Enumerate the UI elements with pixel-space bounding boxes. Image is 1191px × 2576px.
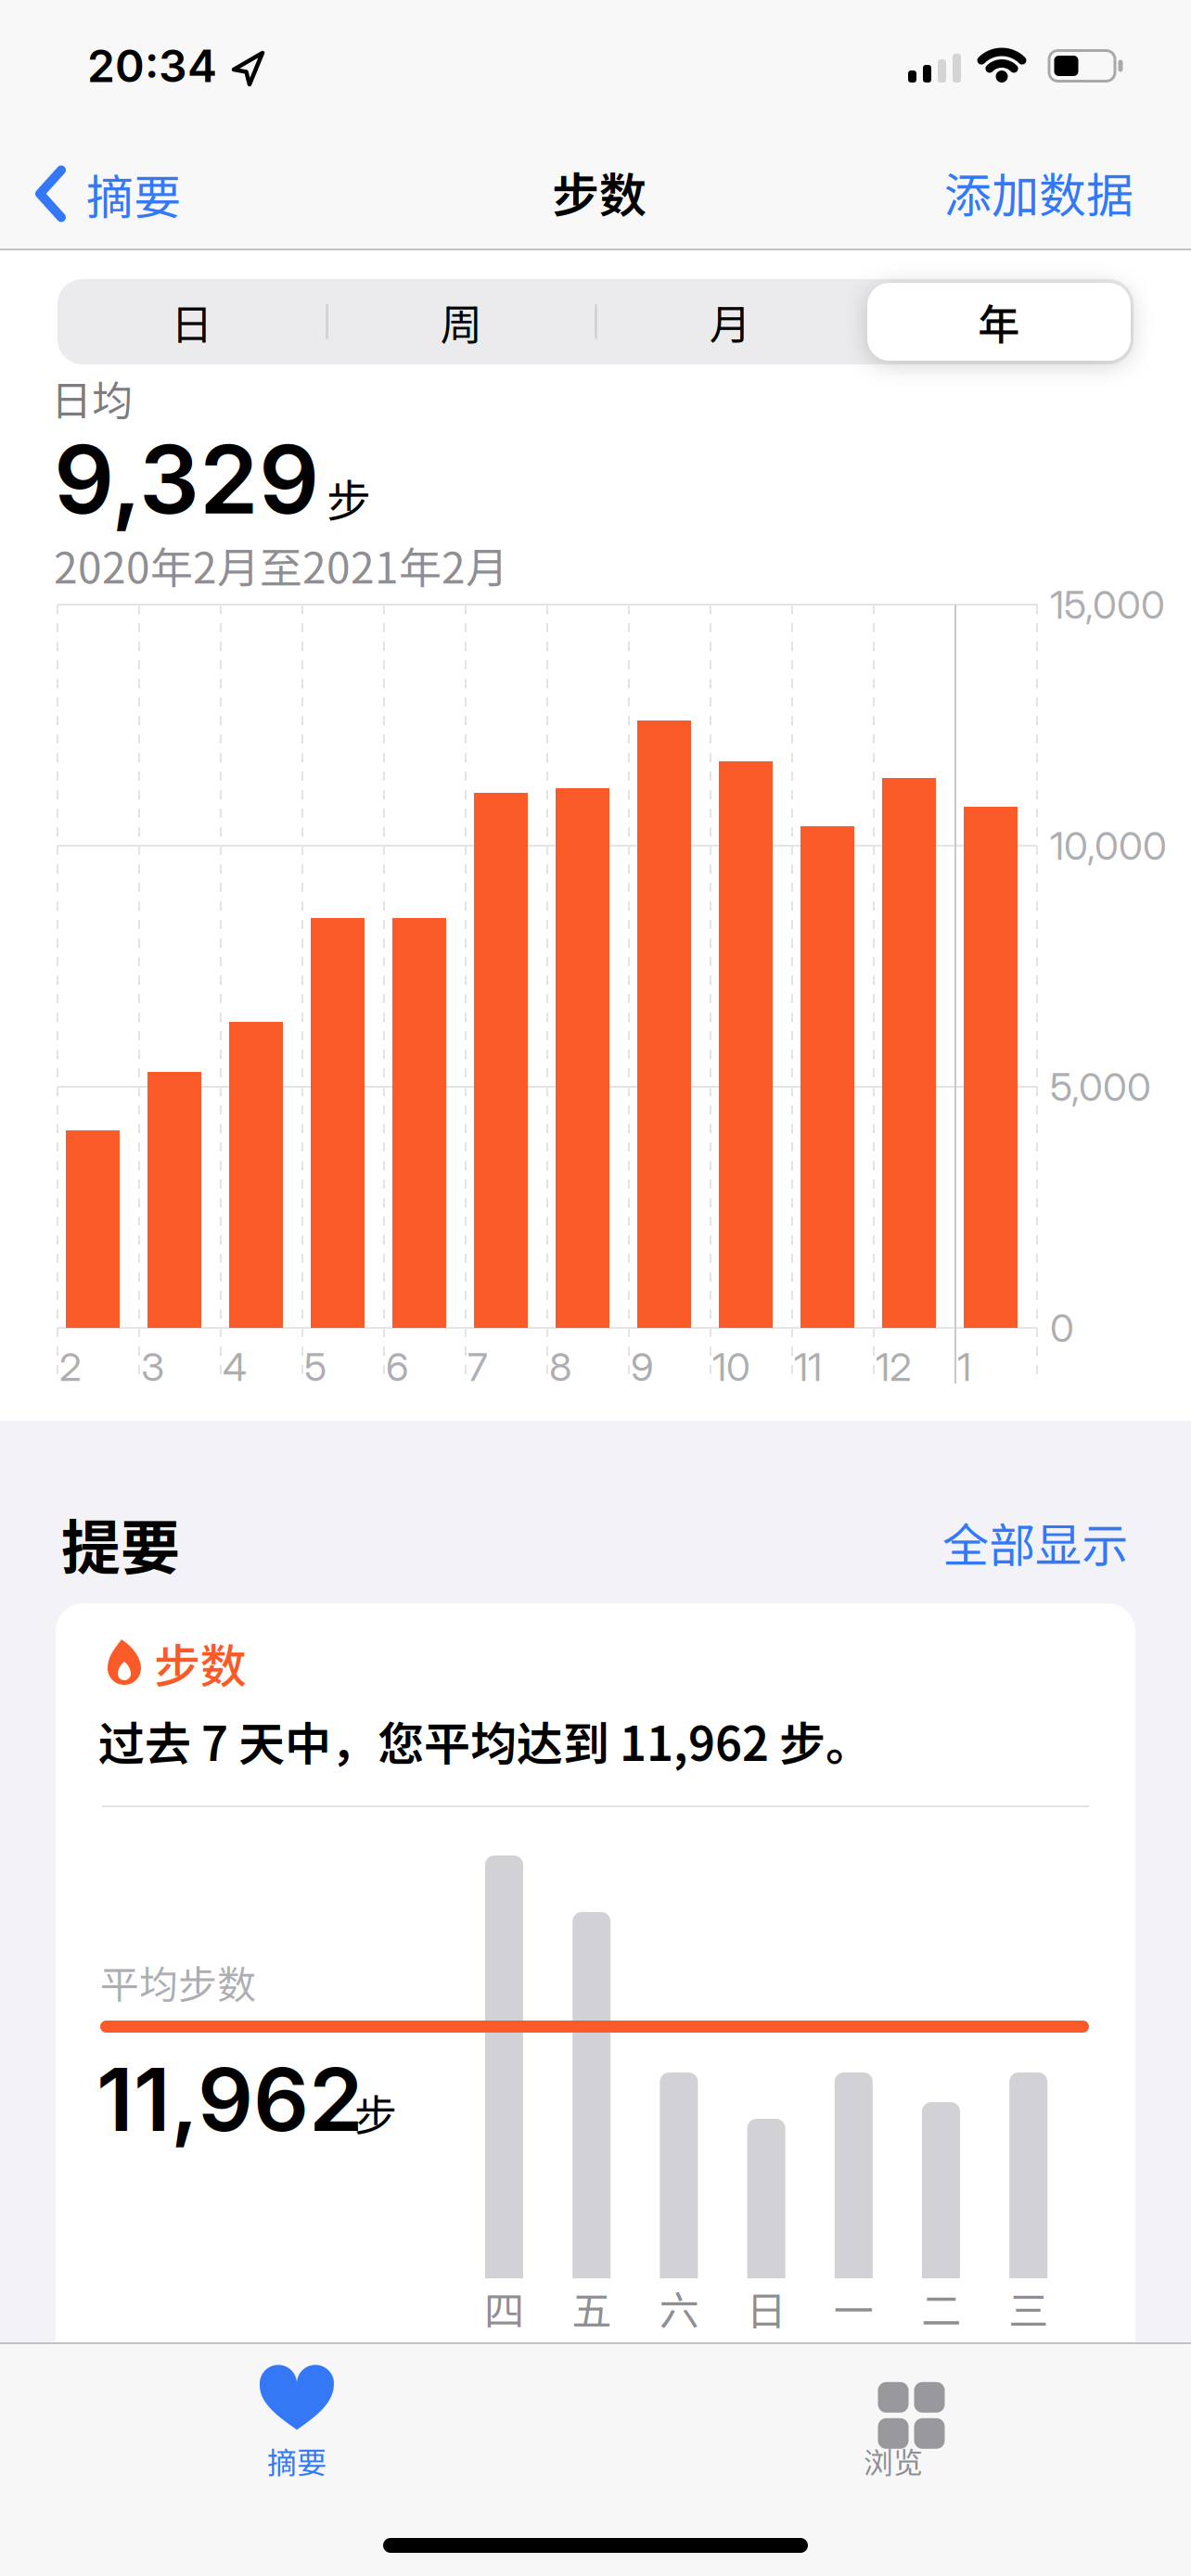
staticText: 摘要: [86, 159, 181, 228]
staticText: 平均步数: [100, 1954, 256, 2010]
staticText: 步数: [552, 158, 647, 226]
staticText: 5,000: [1050, 1063, 1151, 1110]
staticText: 6: [386, 1343, 409, 1390]
staticText: 五: [572, 2279, 611, 2337]
staticText: 全部显示: [942, 1509, 1128, 1576]
staticText: 0: [1050, 1304, 1074, 1351]
staticText: 10: [712, 1343, 750, 1390]
staticText: 摘要: [267, 2439, 327, 2482]
staticText: 六: [659, 2279, 699, 2337]
staticText: 添加数据: [944, 158, 1133, 226]
staticText: 步: [354, 2082, 397, 2144]
staticText: 15,000: [1050, 581, 1165, 628]
staticText: 11: [794, 1343, 822, 1390]
staticText: 2: [59, 1343, 82, 1390]
button[interactable]: 全部显示: [942, 1509, 1128, 1576]
staticText: 9,329: [54, 422, 319, 536]
staticText: 二: [921, 2279, 961, 2337]
staticText: 8: [549, 1343, 571, 1390]
staticText: 日均: [51, 368, 133, 427]
staticText: 日: [746, 2279, 786, 2337]
staticText: 日: [171, 292, 213, 352]
staticText: 步数: [154, 1629, 247, 1696]
staticText: 1: [957, 1343, 971, 1390]
button[interactable]: 月: [595, 279, 864, 364]
staticText: 7: [467, 1343, 488, 1390]
staticText: 11,962: [96, 2047, 364, 2152]
button[interactable]: 添加数据: [944, 158, 1133, 226]
staticText: 四: [484, 2279, 524, 2337]
staticText: 2020年2月至2021年2月: [54, 534, 508, 596]
button[interactable]: 浏览: [726, 2353, 1060, 2493]
button[interactable]: 摘要: [130, 2353, 464, 2493]
staticText: 12: [876, 1343, 912, 1390]
button[interactable]: 年: [864, 279, 1133, 364]
staticText: 过去 7 天中，您平均达到 11,962 步。: [98, 1707, 872, 1774]
staticText: 4: [223, 1343, 247, 1390]
staticText: 步: [327, 465, 371, 530]
staticText: 10,000: [1050, 822, 1167, 869]
staticText: 9: [631, 1343, 654, 1390]
staticText: 年: [978, 292, 1020, 352]
staticText: 周: [440, 292, 482, 352]
staticText: 5: [304, 1343, 327, 1390]
staticText: 一: [834, 2279, 874, 2337]
button[interactable]: 摘要: [35, 159, 181, 228]
staticText: 月: [709, 292, 751, 352]
staticText: 三: [1008, 2279, 1048, 2337]
staticText: 3: [141, 1343, 164, 1390]
button[interactable]: 步数: [56, 1603, 1135, 2342]
button[interactable]: 日: [58, 279, 327, 364]
staticText: 提要: [61, 1500, 180, 1586]
staticText: 20:34: [87, 39, 217, 93]
button[interactable]: 周: [327, 279, 595, 364]
staticText: 浏览: [864, 2439, 923, 2482]
